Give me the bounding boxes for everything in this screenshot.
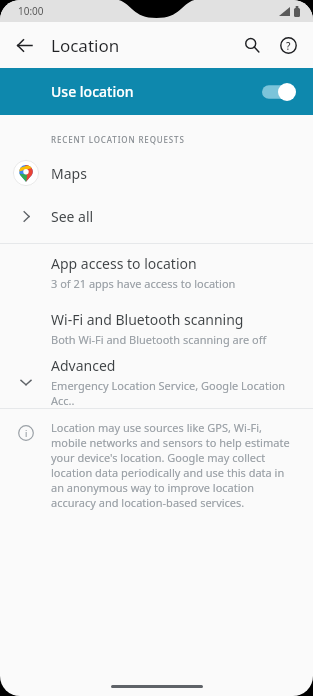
staticText: Use location — [51, 82, 262, 101]
button[interactable]: Help — [271, 28, 305, 62]
staticText: Emergency Location Service, Google Locat… — [51, 378, 301, 408]
button[interactable]: Advanced — [0, 356, 313, 408]
button[interactable]: Use location — [0, 68, 313, 115]
button[interactable]: Wi-Fi and Bluetooth scanning — [0, 301, 313, 356]
staticText: Location may use sources like GPS, Wi-Fi… — [51, 420, 296, 510]
staticText: Location — [51, 34, 120, 57]
staticText: Maps — [51, 164, 87, 183]
staticText: RECENT LOCATION REQUESTS — [51, 134, 185, 145]
staticText: 3 of 21 apps have access to location — [51, 276, 236, 291]
button[interactable]: App access to location — [0, 244, 313, 301]
staticText: See all — [51, 207, 94, 226]
button[interactable]: See all — [0, 196, 313, 236]
staticText: Both Wi-Fi and Bluetooth scanning are of… — [51, 332, 267, 347]
staticText: ? — [286, 39, 291, 53]
staticText: Advanced — [51, 356, 116, 375]
staticText: i — [25, 427, 28, 439]
button[interactable]: Back — [6, 27, 42, 63]
staticText: Wi-Fi and Bluetooth scanning — [51, 310, 244, 329]
staticText: 10:00 — [18, 4, 44, 18]
button[interactable]: Maps — [0, 150, 313, 196]
staticText: App access to location — [51, 254, 197, 273]
button[interactable]: Search — [235, 28, 269, 62]
